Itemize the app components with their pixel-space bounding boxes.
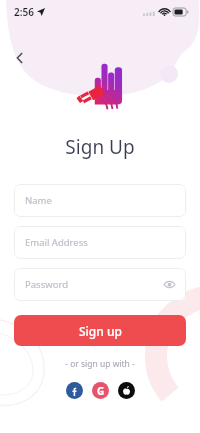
button[interactable]: Sign up with Facebook — [66, 382, 83, 399]
button[interactable]: Sign up with Google — [92, 382, 109, 399]
button[interactable]: Email Address — [14, 226, 186, 259]
staticText: Sign Up — [0, 134, 200, 160]
other: Toggle password visibility — [164, 279, 175, 290]
staticText: Email Address — [25, 236, 88, 249]
staticText: G — [97, 384, 105, 398]
button[interactable]: Sign up with Apple — [118, 382, 135, 399]
staticText: 2:56 — [14, 5, 34, 19]
button[interactable]: Sign up — [14, 315, 186, 346]
button[interactable]: Sign in — [138, 399, 166, 401]
button[interactable]: Name — [14, 184, 186, 217]
button[interactable]: Password — [14, 268, 186, 301]
staticText: - or sign up with - — [0, 358, 200, 370]
staticText: Name — [25, 194, 52, 207]
staticText: Sign in — [138, 399, 166, 401]
button[interactable]: Back — [6, 44, 34, 72]
staticText: Sign up — [79, 323, 122, 339]
staticText: Password — [25, 278, 68, 291]
